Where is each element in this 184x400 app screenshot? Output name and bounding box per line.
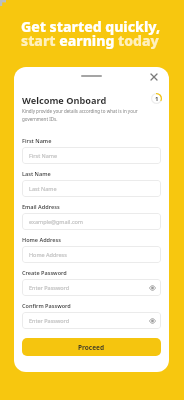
- button[interactable]: Enter Password: [22, 312, 161, 329]
- staticText: Home Address: [29, 251, 67, 258]
- staticText: Enter Password: [29, 317, 70, 324]
- staticText: Kindly provide your details according to…: [22, 108, 139, 123]
- button[interactable]: Step 1: [151, 93, 162, 104]
- staticText: Create Password: [22, 269, 67, 276]
- staticText: Enter Password: [29, 284, 70, 291]
- button[interactable]: Close: [147, 70, 160, 83]
- button[interactable]: Last Name: [22, 180, 161, 197]
- button[interactable]: Proceed: [22, 338, 161, 356]
- staticText: Welcome Onboard: [22, 94, 107, 107]
- button[interactable]: Enter Password: [22, 279, 161, 296]
- staticText: example@gmail.com: [29, 218, 84, 225]
- staticText: First Name: [22, 137, 52, 144]
- staticText: Home Address: [22, 236, 61, 243]
- button[interactable]: example@gmail.com: [22, 213, 161, 230]
- staticText: Last Name: [29, 185, 57, 192]
- staticText: First Name: [29, 152, 58, 159]
- button[interactable]: First Name: [22, 147, 161, 164]
- staticText: Proceed: [78, 343, 105, 352]
- staticText: Get started quickly, start earning today: [21, 17, 161, 50]
- staticText: Last Name: [22, 170, 51, 177]
- staticText: 1: [155, 95, 159, 103]
- staticText: Confirm Password: [22, 302, 71, 309]
- button[interactable]: Home Address: [22, 246, 161, 263]
- staticText: Email Address: [22, 203, 60, 210]
